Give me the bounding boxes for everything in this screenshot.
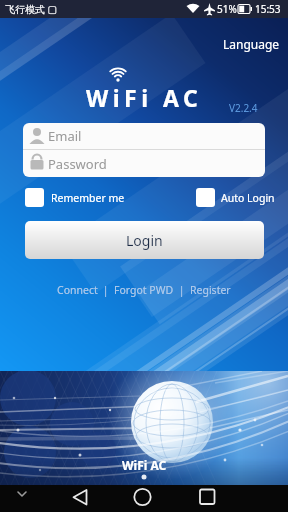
staticText: WiFi AC — [122, 457, 167, 473]
button[interactable]: Login — [25, 221, 264, 259]
button[interactable]: Language — [217, 30, 286, 58]
staticText: Password — [48, 155, 107, 173]
button[interactable] — [60, 485, 100, 512]
staticText: Email — [48, 127, 82, 145]
staticText: WiFi AC — [86, 82, 203, 113]
button[interactable]: Password — [23, 150, 265, 177]
staticText: Connect — [57, 283, 98, 297]
staticText: Register — [190, 283, 231, 297]
staticText: Language — [223, 36, 280, 52]
staticText: Login — [126, 231, 163, 250]
button[interactable]: Remember me — [25, 188, 125, 207]
staticText: 飞行模式 ▢ — [5, 2, 58, 16]
staticText: V2.2.4 — [229, 101, 258, 115]
staticText: 15:53 — [255, 2, 281, 16]
button[interactable]: Email — [23, 123, 265, 149]
button[interactable]: Connect — [55, 281, 100, 299]
button[interactable]: Auto Login — [196, 188, 275, 207]
button[interactable] — [187, 485, 227, 512]
button[interactable]: Register — [188, 281, 233, 299]
staticText: 51% — [217, 2, 237, 16]
button[interactable] — [122, 485, 162, 512]
staticText: Remember me — [51, 191, 125, 205]
staticText: Forgot PWD — [114, 283, 174, 297]
staticText: | — [100, 283, 112, 297]
staticText: Auto Login — [221, 191, 275, 205]
staticText: | — [176, 283, 188, 297]
button[interactable]: Forgot PWD — [112, 281, 176, 299]
